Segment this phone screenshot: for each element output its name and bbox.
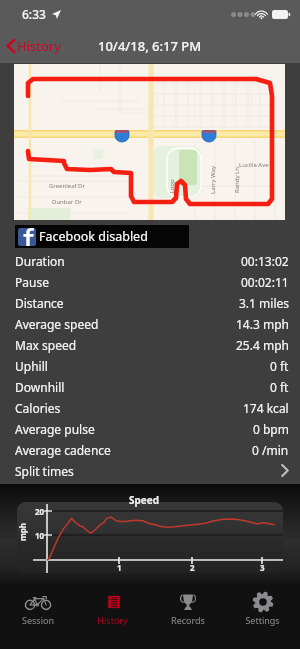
staticText: History [17, 37, 61, 55]
button[interactable]: Average speed [0, 313, 300, 334]
staticText: Split times [15, 463, 74, 479]
button[interactable]: Average cadence [0, 439, 300, 460]
button[interactable]: Facebook disabled [15, 225, 189, 248]
staticText: 0 /min [252, 442, 289, 458]
button[interactable]: Session [0, 588, 75, 649]
staticText: Duration [15, 253, 65, 269]
staticText: 0 bpm [253, 421, 289, 437]
staticText: 00:13:02 [241, 253, 289, 269]
staticText: 25.4 mph [236, 337, 289, 353]
staticText: Average pulse [15, 421, 95, 437]
staticText: Settings [245, 614, 280, 626]
staticText: 00:02:11 [241, 274, 289, 290]
staticText: 0 ft [270, 358, 289, 374]
staticText: 10/4/18, 6:17 PM [98, 37, 202, 55]
staticText: Records [171, 614, 205, 626]
button[interactable]: History [75, 588, 150, 649]
staticText: Max speed [15, 337, 77, 353]
staticText: Speed [129, 493, 160, 507]
button[interactable]: History [0, 33, 67, 59]
staticText: Loop [167, 178, 175, 193]
staticText: 2 [190, 562, 195, 573]
staticText: 20 [35, 506, 45, 517]
staticText: Lucille Ave [239, 161, 269, 169]
button[interactable]: Max speed [0, 334, 300, 355]
staticText: 3.1 miles [239, 295, 289, 311]
staticText: History [97, 614, 128, 626]
staticText: Downhill [15, 379, 65, 395]
staticText: Session [22, 614, 54, 626]
staticText: 1 [117, 562, 122, 573]
staticText: 174 kcal [243, 400, 289, 416]
staticText: 6:33 [22, 6, 46, 22]
staticText: Uphill [15, 358, 48, 374]
button[interactable]: Settings [225, 588, 300, 649]
button[interactable]: Distance [0, 292, 300, 313]
staticText: 3 [260, 562, 265, 573]
button[interactable]: Downhill [0, 376, 300, 397]
staticText: Average speed [15, 316, 99, 332]
button[interactable]: Duration [0, 250, 300, 271]
staticText: Average cadence [15, 442, 111, 458]
button[interactable]: Records [150, 588, 225, 649]
button[interactable]: Pause [0, 271, 300, 292]
staticText: mph [17, 522, 28, 541]
button[interactable]: Split times [0, 460, 300, 481]
button[interactable]: Average pulse [0, 418, 300, 439]
staticText: 0 ft [270, 379, 289, 395]
staticText: Dunbar Dr [52, 198, 82, 206]
staticText: 14.3 mph [236, 316, 289, 332]
button[interactable]: Uphill [0, 355, 300, 376]
staticText: Greenleaf Dr [49, 182, 85, 190]
staticText: Larry Way [209, 166, 217, 194]
staticText: Randy Ln [233, 167, 241, 193]
staticText: Facebook disabled [39, 228, 148, 245]
staticText: 10 [35, 530, 45, 541]
staticText: Calories [15, 400, 61, 416]
staticText: Pause [15, 274, 49, 290]
staticText: Distance [15, 295, 64, 311]
button[interactable]: Calories [0, 397, 300, 418]
